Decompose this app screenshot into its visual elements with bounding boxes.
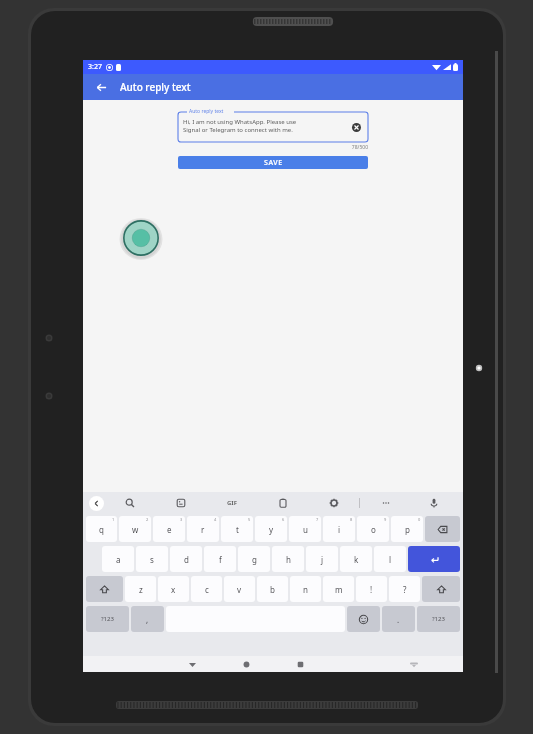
staticText: u xyxy=(303,524,308,535)
staticText: t xyxy=(236,524,239,535)
staticText: f xyxy=(219,554,222,565)
button[interactable]: s xyxy=(136,546,168,572)
button[interactable]: Clipboard xyxy=(257,492,308,514)
button[interactable]: Back xyxy=(92,78,110,96)
button[interactable]: Shift xyxy=(422,576,460,602)
staticText: h xyxy=(286,554,291,565)
staticText: . xyxy=(397,614,400,625)
staticText: n xyxy=(303,584,308,595)
button[interactable]: g xyxy=(238,546,270,572)
button[interactable]: a xyxy=(102,546,134,572)
button[interactable]: v xyxy=(224,576,255,602)
staticText: ?123 xyxy=(432,615,445,623)
button[interactable]: k xyxy=(340,546,372,572)
staticText: q xyxy=(99,524,104,535)
button[interactable]: f xyxy=(204,546,236,572)
button[interactable]: , xyxy=(131,606,164,632)
button[interactable]: Home xyxy=(219,656,273,672)
button[interactable]: ! xyxy=(356,576,387,602)
staticText: ! xyxy=(370,584,373,595)
button[interactable]: l xyxy=(374,546,406,572)
button[interactable]: Recents xyxy=(273,656,327,672)
button[interactable]: . xyxy=(382,606,415,632)
button[interactable]: Hide keyboard xyxy=(165,656,219,672)
button[interactable]: More options xyxy=(360,492,411,514)
button[interactable]: z xyxy=(125,576,156,602)
staticText: i xyxy=(338,524,341,535)
staticText: Auto reply text xyxy=(120,80,191,94)
button[interactable]: n xyxy=(290,576,321,602)
button[interactable]: b xyxy=(257,576,288,602)
staticText: r xyxy=(201,524,205,535)
button[interactable]: ? xyxy=(389,576,420,602)
staticText: SAVE xyxy=(264,158,283,168)
staticText: 9 xyxy=(384,517,387,522)
staticText: 3 xyxy=(180,517,183,522)
staticText: v xyxy=(237,584,242,595)
staticText: 7 xyxy=(316,517,319,522)
staticText: z xyxy=(139,584,143,595)
button[interactable]: w xyxy=(119,516,151,542)
button[interactable]: r xyxy=(187,516,219,542)
staticText: d xyxy=(184,554,189,565)
button[interactable]: Emoji xyxy=(347,606,380,632)
staticText: c xyxy=(205,584,209,595)
staticText: o xyxy=(371,524,376,535)
staticText: 0 xyxy=(418,517,421,522)
button[interactable]: Enter xyxy=(408,546,460,572)
staticText: ?123 xyxy=(101,615,114,623)
staticText: 6 xyxy=(282,517,285,522)
staticText: Hi, I am not using WhatsApp. Please use xyxy=(183,118,297,126)
button[interactable]: x xyxy=(158,576,189,602)
staticText: x xyxy=(171,584,176,595)
button[interactable]: Stickers xyxy=(155,492,206,514)
button[interactable]: Shift xyxy=(86,576,123,602)
staticText: Auto reply text xyxy=(189,108,224,115)
button[interactable]: SAVE xyxy=(178,156,368,169)
button[interactable]: Backspace xyxy=(425,516,460,542)
staticText: 8 xyxy=(350,517,353,522)
staticText: 4 xyxy=(214,517,217,522)
button[interactable]: u xyxy=(289,516,321,542)
staticText: l xyxy=(389,554,392,565)
staticText: 5 xyxy=(248,517,251,522)
button[interactable]: Search xyxy=(104,492,155,514)
button[interactable]: ?123 xyxy=(417,606,460,632)
button[interactable]: o xyxy=(357,516,389,542)
staticText: p xyxy=(405,524,410,535)
staticText: GIF xyxy=(227,499,237,507)
staticText: e xyxy=(167,524,172,535)
staticText: g xyxy=(252,554,257,565)
button[interactable]: p xyxy=(391,516,423,542)
button[interactable]: i xyxy=(323,516,355,542)
button[interactable]: h xyxy=(272,546,304,572)
button[interactable]: Floating action xyxy=(119,216,163,260)
staticText: 2 xyxy=(146,517,149,522)
button[interactable]: j xyxy=(306,546,338,572)
button[interactable]: t xyxy=(221,516,253,542)
button[interactable]: d xyxy=(170,546,202,572)
staticText: 78/500 xyxy=(178,144,368,151)
staticText: y xyxy=(269,524,274,535)
staticText: j xyxy=(321,554,324,565)
button[interactable]: q xyxy=(86,516,117,542)
staticText: 1 xyxy=(112,517,115,522)
staticText: m xyxy=(335,584,343,595)
button[interactable]: Clear text xyxy=(349,120,363,134)
staticText: Signal or Telegram to connect with me. xyxy=(183,126,293,134)
button[interactable]: c xyxy=(191,576,222,602)
button[interactable]: Switch keyboard xyxy=(387,656,441,672)
button[interactable]: y xyxy=(255,516,287,542)
button[interactable]: Voice input xyxy=(411,492,457,514)
button[interactable]: Settings xyxy=(308,492,359,514)
button[interactable]: GIF xyxy=(206,492,257,514)
button[interactable]: ?123 xyxy=(86,606,129,632)
button[interactable]: m xyxy=(323,576,354,602)
staticText: s xyxy=(150,554,154,565)
staticText: k xyxy=(354,554,359,565)
button[interactable]: Close toolbar xyxy=(89,496,104,511)
staticText: b xyxy=(270,584,275,595)
staticText: w xyxy=(132,524,139,535)
button[interactable]: e xyxy=(153,516,185,542)
